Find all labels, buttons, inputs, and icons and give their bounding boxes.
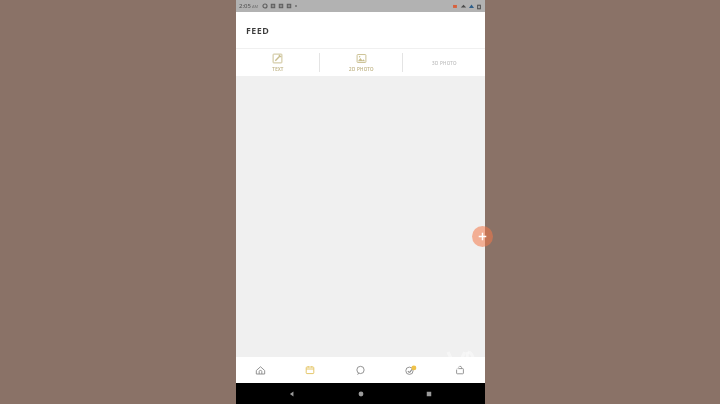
button[interactable]: Back — [280, 383, 304, 404]
button[interactable]: Recent apps — [417, 383, 441, 404]
button[interactable]: 2D PHOTO — [320, 49, 402, 76]
staticText: 2D PHOTO — [349, 66, 374, 72]
staticText: TEXT — [272, 66, 284, 72]
button[interactable]: Home — [236, 357, 285, 383]
button[interactable]: Calendar — [285, 357, 335, 383]
button[interactable]: Home — [349, 383, 373, 404]
button[interactable]: Create new post — [472, 226, 493, 247]
staticText: 2:05 — [239, 2, 251, 10]
staticText: AM — [252, 4, 259, 9]
button[interactable]: Shop — [435, 357, 485, 383]
button[interactable]: TEXT — [236, 49, 319, 76]
button[interactable]: Tasks — [385, 357, 435, 383]
staticText: 3D PHOTO — [432, 60, 457, 66]
button[interactable]: Messages — [335, 357, 385, 383]
staticText: FEED — [246, 24, 270, 36]
button[interactable]: 3D PHOTO — [403, 49, 485, 76]
